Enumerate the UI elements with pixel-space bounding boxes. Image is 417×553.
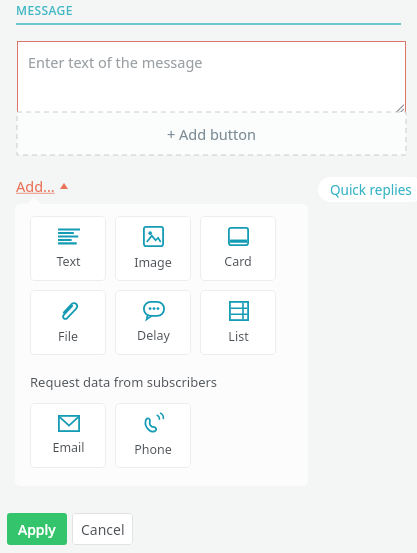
staticText: Phone [134,441,172,458]
button[interactable]: Enter text of the message [17,41,406,115]
button[interactable]: + Add button [17,112,406,155]
button[interactable]: Text [30,216,106,281]
staticText: Cancel [81,520,125,539]
staticText: Apply [18,520,56,539]
button[interactable]: Delay [115,290,191,355]
staticText: Enter text of the message [28,52,203,72]
staticText: Card [224,253,252,270]
button[interactable]: Cancel [72,513,133,545]
button[interactable]: Email [30,403,106,468]
button[interactable]: Image [115,216,191,281]
staticText: Image [134,254,172,271]
staticText: Quick replies [330,181,412,199]
button[interactable]: List [200,290,276,355]
staticText: Request data from subscribers [30,373,218,391]
button[interactable]: Card [200,216,276,281]
button[interactable]: Quick replies [318,177,417,202]
staticText: Add... [16,176,55,196]
button[interactable]: Apply [7,513,67,545]
button[interactable]: File [30,290,106,355]
staticText: + Add button [167,124,257,144]
staticText: File [58,328,78,345]
staticText: Delay [137,327,170,344]
staticText: Email [52,439,85,456]
staticText: List [228,328,249,345]
staticText: Text [56,253,81,270]
button[interactable]: Add... [16,176,68,196]
staticText: MESSAGE [16,2,73,18]
button[interactable]: Phone [115,403,191,468]
